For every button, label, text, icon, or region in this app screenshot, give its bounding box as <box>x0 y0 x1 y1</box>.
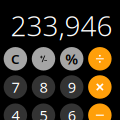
staticText: % <box>65 49 78 69</box>
button[interactable]: % <box>60 47 83 70</box>
button[interactable]: 5 <box>32 103 55 120</box>
staticText: 4 <box>11 105 19 120</box>
staticText: 233,946 <box>10 7 112 44</box>
staticText: 9 <box>68 77 76 97</box>
button[interactable]: 4 <box>4 103 27 120</box>
button[interactable]: 8 <box>32 75 55 99</box>
staticText: 8 <box>39 77 47 97</box>
button[interactable]: Divide <box>88 47 112 70</box>
staticText: 6 <box>68 105 76 120</box>
button[interactable]: 9 <box>60 75 83 99</box>
button[interactable]: Multiply <box>88 75 112 99</box>
button[interactable]: C <box>4 47 27 70</box>
staticText: C <box>11 50 20 68</box>
button[interactable]: Minus <box>88 103 112 120</box>
button[interactable]: Plus minus <box>32 47 55 70</box>
staticText: 7 <box>11 77 19 97</box>
button[interactable]: 7 <box>4 75 27 99</box>
button[interactable]: 6 <box>60 103 83 120</box>
staticText: 5 <box>39 105 47 120</box>
